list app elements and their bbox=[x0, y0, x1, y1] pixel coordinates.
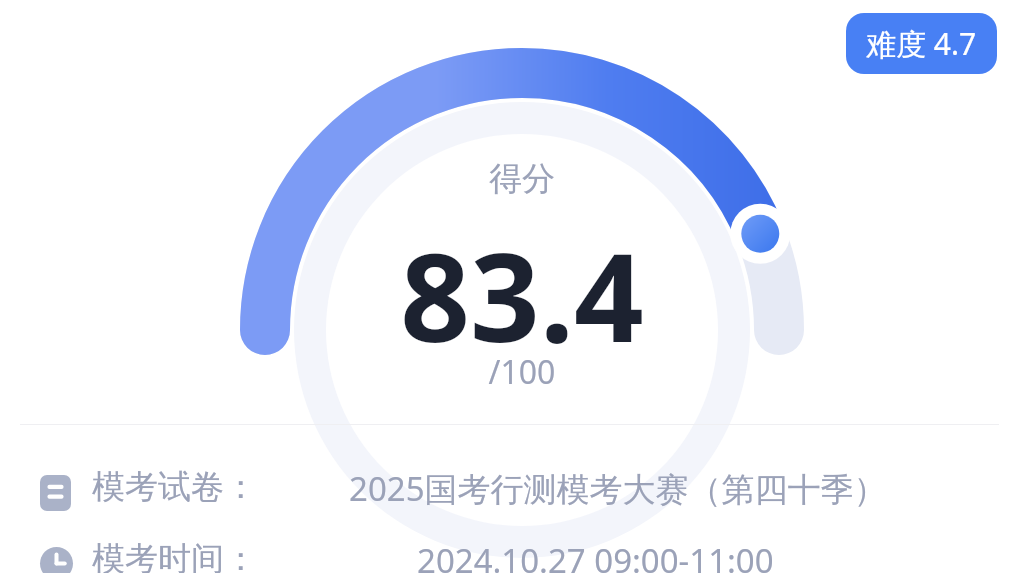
button[interactable]: Paper bbox=[0, 466, 1019, 573]
button[interactable]: Clock bbox=[0, 538, 1019, 573]
staticText: 83.4 bbox=[322, 212, 722, 378]
other: Paper bbox=[40, 475, 71, 511]
staticText: 2025国考行测模考大赛（第四十季） bbox=[349, 466, 887, 511]
staticText: 模考试卷： bbox=[92, 466, 257, 508]
other: Clock bbox=[40, 547, 73, 573]
staticText: 模考时间： bbox=[92, 538, 257, 573]
staticText: /100 bbox=[422, 350, 622, 394]
staticText: 难度 4.7 bbox=[866, 23, 977, 64]
staticText: 2024.10.27 09:00-11:00 bbox=[417, 538, 774, 573]
button[interactable]: 难度 4.7 bbox=[846, 13, 997, 74]
staticText: 得分 bbox=[422, 158, 622, 200]
